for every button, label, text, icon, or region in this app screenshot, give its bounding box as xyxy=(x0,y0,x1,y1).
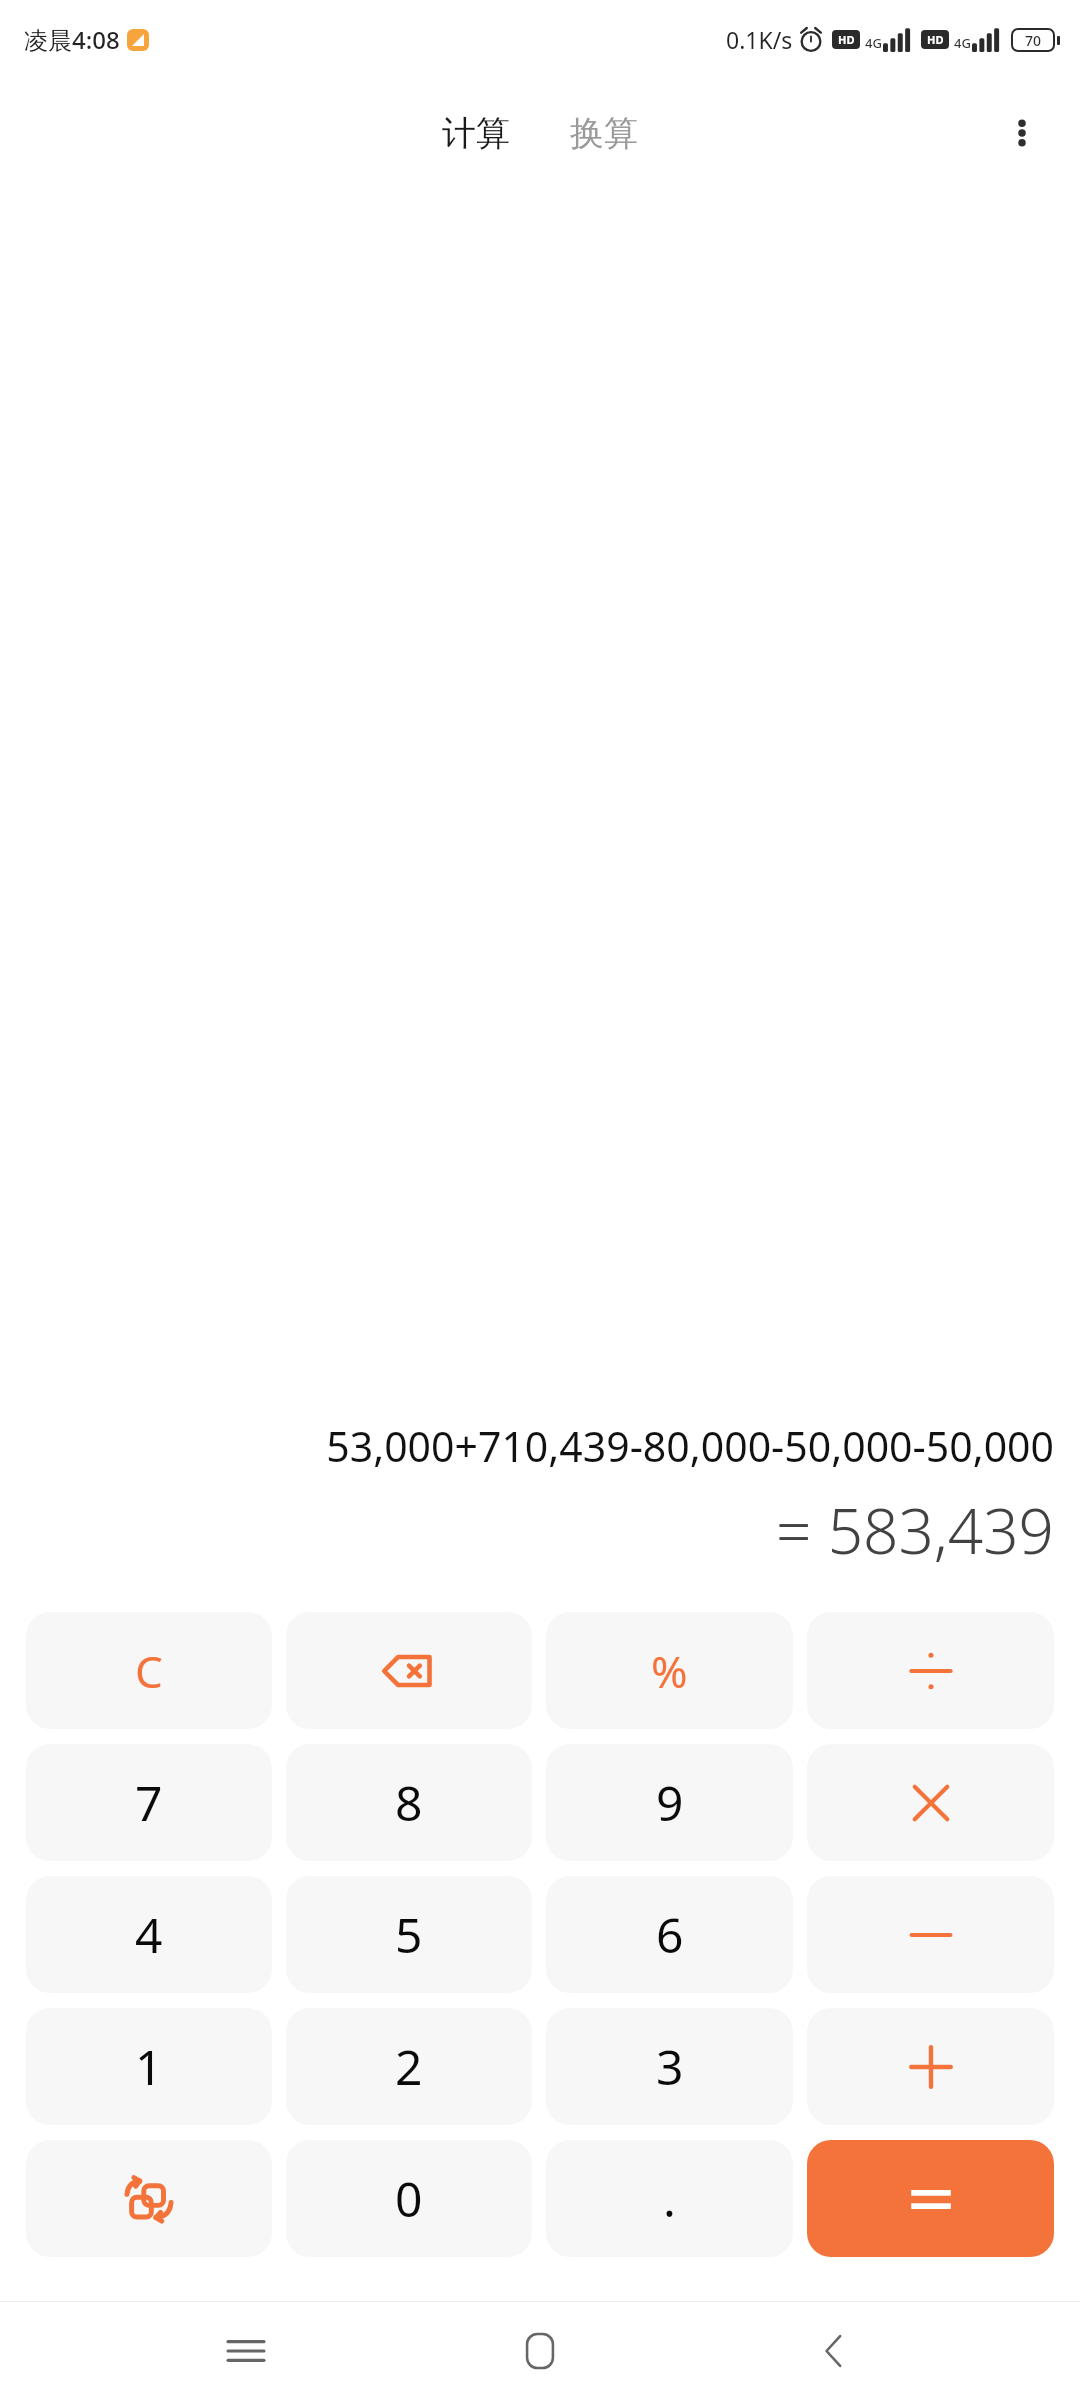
button[interactable]: 3 xyxy=(546,2008,793,2125)
button[interactable]: Add xyxy=(807,2008,1054,2125)
button[interactable]: More options xyxy=(986,97,1058,169)
button[interactable]: 1 xyxy=(26,2008,272,2125)
staticText: . xyxy=(663,2166,676,2231)
staticText: C xyxy=(135,1641,163,1701)
button[interactable]: 9 xyxy=(546,1744,793,1861)
button[interactable]: Divide xyxy=(807,1612,1054,1729)
button[interactable]: 4 xyxy=(26,1876,272,1993)
staticText: HD xyxy=(838,32,855,47)
staticText: 70 xyxy=(1025,31,1042,50)
button[interactable]: Back xyxy=(786,2303,882,2399)
button[interactable]: 7 xyxy=(26,1744,272,1861)
staticText: = 583,439 xyxy=(26,1488,1054,1572)
staticText: 8 xyxy=(395,1770,423,1835)
staticText: 凌晨4:08 xyxy=(24,23,120,56)
button[interactable]: 8 xyxy=(286,1744,532,1861)
button[interactable]: Subtract xyxy=(807,1876,1054,1993)
staticText: 换算 xyxy=(570,112,638,155)
button[interactable]: 2 xyxy=(286,2008,532,2125)
staticText: 3 xyxy=(656,2034,684,2099)
button[interactable]: . xyxy=(546,2140,793,2257)
button[interactable]: Equals xyxy=(807,2140,1054,2257)
staticText: % xyxy=(651,1641,688,1701)
staticText: 2 xyxy=(395,2034,423,2099)
staticText: 计算 xyxy=(442,112,510,155)
button[interactable]: Backspace xyxy=(286,1612,532,1729)
staticText: 5 xyxy=(395,1902,423,1967)
staticText: 0.1K/s xyxy=(726,24,793,55)
staticText: 6 xyxy=(656,1902,684,1967)
staticText: 9 xyxy=(656,1770,684,1835)
staticText: 4G xyxy=(954,34,971,52)
button[interactable]: C xyxy=(26,1612,272,1729)
button[interactable]: 6 xyxy=(546,1876,793,1993)
staticText: 7 xyxy=(135,1770,163,1835)
staticText: 53,000+710,439-80,000-50,000-50,000 xyxy=(26,1418,1054,1474)
button[interactable]: Convert xyxy=(26,2140,272,2257)
button[interactable]: 计算 xyxy=(430,104,522,163)
staticText: 1 xyxy=(135,2034,163,2099)
button[interactable]: Recent apps xyxy=(198,2303,294,2399)
staticText: 4G xyxy=(865,34,882,52)
button[interactable]: 0 xyxy=(286,2140,532,2257)
button[interactable]: Multiply xyxy=(807,1744,1054,1861)
staticText: 0 xyxy=(395,2166,423,2231)
button[interactable]: Home xyxy=(492,2303,588,2399)
button[interactable]: 5 xyxy=(286,1876,532,1993)
staticText: 4 xyxy=(135,1902,163,1967)
button[interactable]: 换算 xyxy=(558,104,650,163)
staticText: HD xyxy=(927,32,944,47)
button[interactable]: % xyxy=(546,1612,793,1729)
